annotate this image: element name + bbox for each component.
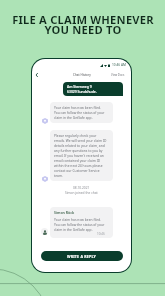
button[interactable]: Am Sternweg 9 63029 Sundshude. (63, 82, 123, 96)
staticText: FILE A CLAIM WHENEVER YOU NEED TO (12, 12, 154, 38)
button[interactable]: View Docs (111, 73, 125, 77)
staticText: 08.10.2021 (73, 186, 90, 190)
staticText: 10:46 (97, 232, 105, 236)
staticText: Simon joined the chat (65, 191, 98, 195)
staticText: Your claim has now been filed. You can f… (54, 105, 105, 120)
staticText: Please regularly check your emails. We w… (54, 133, 107, 178)
button[interactable]: Please regularly check your emails. We w… (50, 130, 113, 181)
staticText: Am Sternweg 9 63029 Sundshude. (67, 84, 97, 94)
button[interactable]: WRITE A REPLY (41, 251, 123, 261)
staticText: Your claim has now been filed. You can f… (54, 217, 105, 232)
staticText: 10:46 AM (112, 63, 127, 67)
button[interactable]: Back (32, 71, 42, 79)
staticText: View Docs (111, 73, 125, 77)
button[interactable]: Simon Röck (50, 207, 113, 238)
staticText: Chat History (73, 73, 91, 77)
staticText: Simon Röck (54, 210, 75, 215)
staticText: WRITE A REPLY (67, 254, 97, 259)
button[interactable]: Your claim has now been filed. You can f… (50, 102, 113, 123)
